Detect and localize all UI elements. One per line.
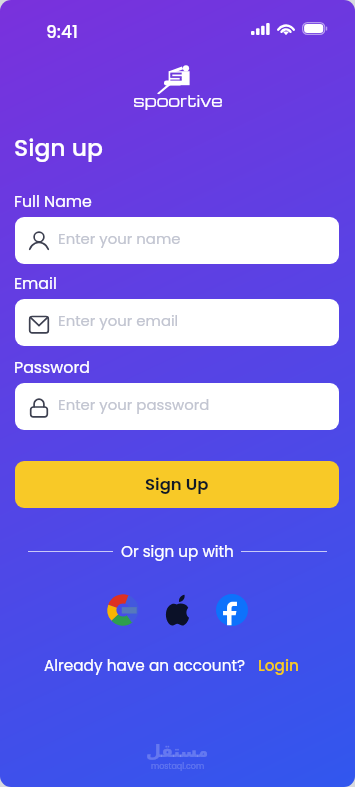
staticText: Already have an account? xyxy=(44,655,246,676)
staticText: 9:41 xyxy=(46,20,78,44)
staticText: Enter your email xyxy=(58,310,179,331)
button[interactable]: Sign Up xyxy=(15,461,339,508)
button[interactable] xyxy=(15,383,339,430)
staticText: Or sign up with xyxy=(121,541,234,562)
staticText: mostaql.com xyxy=(151,761,205,772)
staticText: Email xyxy=(14,272,57,294)
button[interactable] xyxy=(15,299,339,346)
staticText: Enter your name xyxy=(58,228,181,249)
staticText: مستقل xyxy=(146,741,209,761)
button[interactable] xyxy=(15,217,339,264)
staticText: Sign Up xyxy=(145,473,209,496)
staticText: spoortive xyxy=(133,90,223,111)
staticText: Password xyxy=(14,356,90,378)
button[interactable]: Sign up with Google xyxy=(106,593,139,626)
button[interactable]: Sign up with Apple xyxy=(161,593,194,626)
staticText: Sign up xyxy=(14,131,103,164)
staticText: Enter your password xyxy=(58,394,210,415)
staticText: Full Name xyxy=(14,190,92,212)
staticText: Login xyxy=(258,655,299,676)
button[interactable]: Sign up with Facebook xyxy=(215,593,248,626)
button[interactable]: Login xyxy=(258,655,299,676)
